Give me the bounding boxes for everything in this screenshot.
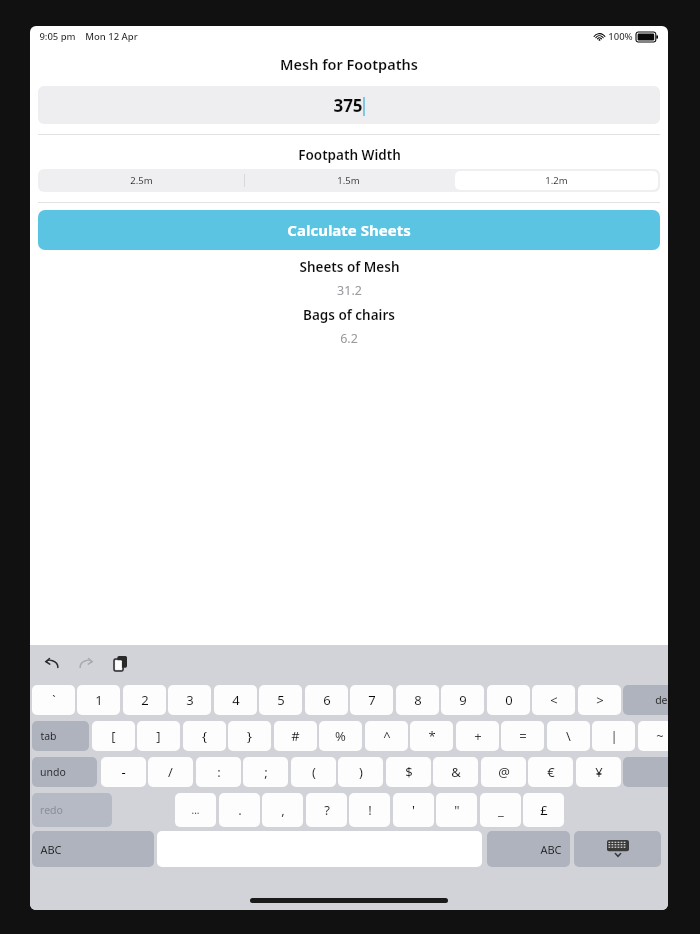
button[interactable]: ^ [365, 721, 408, 751]
button[interactable]: Paste [110, 653, 130, 673]
button[interactable]: ] [137, 721, 180, 751]
button[interactable]: \ [547, 721, 590, 751]
button[interactable]: ; [243, 757, 288, 787]
staticText: [ [111, 727, 116, 745]
staticText: Sheets of Mesh [299, 258, 400, 276]
button[interactable]: redo [32, 793, 112, 827]
staticText: ¥ [595, 763, 603, 781]
button[interactable]: £ [523, 793, 564, 827]
button[interactable]: 8 [396, 685, 439, 715]
button[interactable]: Calculate Sheets [38, 210, 660, 250]
staticText: 4 [232, 691, 240, 709]
button[interactable]: 375 [38, 86, 660, 124]
button[interactable]: undo [32, 757, 97, 787]
staticText: 5 [277, 691, 285, 709]
button[interactable]: / [148, 757, 193, 787]
button[interactable]: > [578, 685, 621, 715]
staticText: ... [191, 803, 200, 817]
button[interactable]: 7 [350, 685, 393, 715]
button[interactable]: - [101, 757, 146, 787]
button[interactable]: ' [393, 793, 434, 827]
staticText: ? [324, 801, 330, 819]
button[interactable]: ) [338, 757, 383, 787]
staticText: tab [40, 729, 57, 743]
button[interactable]: 2 [123, 685, 166, 715]
staticText: { [202, 727, 207, 745]
staticText: undo [40, 765, 66, 779]
staticText: ] [156, 727, 161, 745]
staticText: 1.2m [545, 174, 568, 187]
button[interactable]: 9 [441, 685, 484, 715]
staticText: - [121, 763, 126, 781]
button[interactable]: } [228, 721, 271, 751]
button[interactable]: # [274, 721, 317, 751]
button[interactable]: ¥ [576, 757, 621, 787]
button[interactable]: 4 [214, 685, 257, 715]
button[interactable]: < [532, 685, 575, 715]
button[interactable]: { [183, 721, 226, 751]
staticText: ) [359, 763, 363, 781]
staticText: . [238, 801, 242, 819]
staticText: redo [40, 803, 63, 817]
staticText: 7 [368, 691, 376, 709]
button[interactable]: ? [306, 793, 347, 827]
button[interactable]: ... [175, 793, 216, 827]
button[interactable]: ~ [638, 721, 668, 751]
staticText: , [281, 801, 285, 819]
staticText: 1.5m [337, 174, 360, 187]
button[interactable]: delete [623, 685, 668, 715]
button[interactable]: | [592, 721, 635, 751]
button[interactable]: 3 [168, 685, 211, 715]
button[interactable]: % [319, 721, 362, 751]
staticText: ; [264, 763, 268, 781]
staticText: ~ [656, 727, 664, 745]
button[interactable]: , [262, 793, 303, 827]
staticText: 31.2 [337, 282, 362, 299]
button[interactable]: 1.5m [247, 171, 450, 190]
staticText: 6.2 [340, 330, 358, 347]
button[interactable]: 1 [77, 685, 120, 715]
staticText: delete [655, 693, 668, 707]
staticText: # [291, 727, 300, 745]
button[interactable]: Hide keyboard [574, 831, 661, 867]
button[interactable]: ` [32, 685, 75, 715]
button[interactable]: ABC [32, 831, 154, 867]
button[interactable]: ( [291, 757, 336, 787]
button[interactable]: 6 [305, 685, 348, 715]
button[interactable]: 1.2m [455, 171, 658, 190]
button[interactable]: . [219, 793, 260, 827]
button[interactable]: [ [92, 721, 135, 751]
button[interactable]: = [501, 721, 544, 751]
button[interactable]: _ [480, 793, 521, 827]
button[interactable]: Undo [42, 653, 62, 673]
staticText: ' [412, 801, 415, 819]
staticText: < [550, 691, 558, 709]
button[interactable]: 0 [487, 685, 530, 715]
staticText: 2.5m [130, 174, 153, 187]
staticText: 1 [95, 691, 103, 709]
button[interactable]: ! [349, 793, 390, 827]
button[interactable]: € [528, 757, 573, 787]
button[interactable]: & [433, 757, 478, 787]
staticText: _ [498, 801, 504, 819]
button[interactable]: + [456, 721, 499, 751]
button[interactable]: " [436, 793, 477, 827]
button[interactable]: 2.5m [40, 171, 242, 190]
staticText: ` [52, 692, 56, 708]
staticText: Calculate Sheets [287, 220, 411, 240]
button[interactable]: * [410, 721, 453, 751]
staticText: € [547, 763, 555, 781]
staticText: 8 [414, 691, 422, 709]
button[interactable]: 5 [259, 685, 302, 715]
button[interactable]: ABC [487, 831, 570, 867]
staticText: Mon 12 Apr [85, 30, 138, 43]
staticText: ( [312, 763, 316, 781]
button[interactable]: : [196, 757, 241, 787]
staticText: 2 [141, 691, 149, 709]
button[interactable]: Redo [76, 653, 96, 673]
button[interactable]: @ [481, 757, 526, 787]
button[interactable]: $ [386, 757, 431, 787]
button[interactable]: tab [32, 721, 89, 751]
